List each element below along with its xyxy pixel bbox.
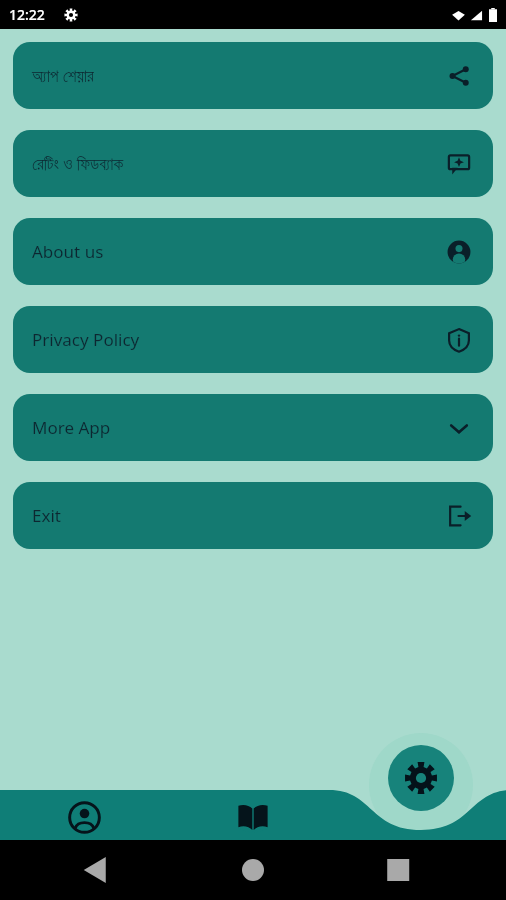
staticText: Privacy Policy [32, 328, 140, 351]
other: Rating and feedback [446, 151, 472, 177]
staticText: অ্যাপ শেয়ার [32, 64, 94, 87]
button[interactable]: About us [13, 218, 493, 285]
other: Share app [446, 63, 472, 89]
staticText: 12:22 [9, 5, 45, 24]
button[interactable]: Settings [388, 745, 454, 811]
button[interactable]: More App [13, 394, 493, 461]
staticText: More App [32, 416, 111, 439]
button[interactable]: Exit [13, 482, 493, 549]
button[interactable]: Profile [61, 794, 107, 840]
button[interactable]: Library [230, 794, 276, 840]
other: More apps [446, 415, 472, 441]
staticText: About us [32, 240, 104, 263]
button[interactable]: অ্যাপ শেয়ার [13, 42, 493, 109]
other: Privacy policy [446, 327, 472, 353]
button[interactable]: রেটিং ও ফিডব্যাক [13, 130, 493, 197]
staticText: Exit [32, 504, 61, 527]
button[interactable]: Privacy Policy [13, 306, 493, 373]
staticText: রেটিং ও ফিডব্যাক [32, 152, 124, 175]
other: About us [446, 239, 472, 265]
other: Exit [446, 503, 472, 529]
